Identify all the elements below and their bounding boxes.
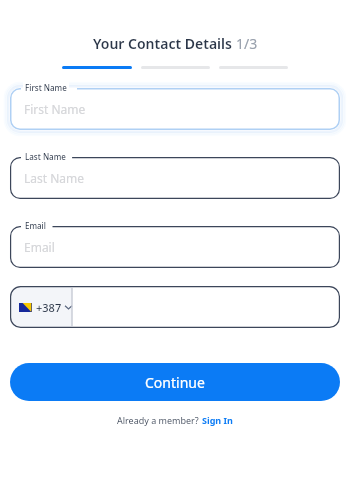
staticText: Last Name [24, 170, 85, 186]
staticText: +387 [36, 300, 62, 315]
staticText: Email [25, 220, 46, 231]
button[interactable]: Last Name [10, 150, 340, 199]
staticText: Last Name [25, 151, 66, 162]
button[interactable]: Select country calling code [10, 286, 72, 328]
staticText: Sign In [202, 414, 233, 426]
button[interactable] [72, 286, 340, 328]
staticText: 1/3 [236, 34, 258, 53]
button[interactable]: First Name [10, 81, 340, 130]
staticText: First Name [25, 82, 67, 93]
staticText: First Name [24, 101, 86, 117]
staticText: Already a member? [117, 414, 202, 426]
staticText: Continue [145, 373, 205, 392]
button[interactable]: Already a member? [113, 410, 237, 430]
button[interactable]: Continue [10, 363, 340, 401]
button[interactable]: Email [10, 219, 340, 268]
staticText: Your Contact Details [93, 34, 232, 53]
staticText: Email [24, 239, 55, 255]
